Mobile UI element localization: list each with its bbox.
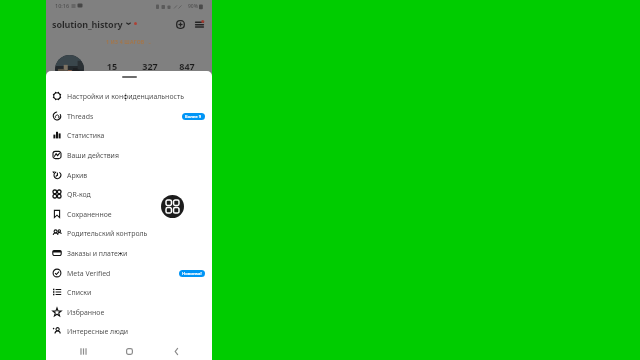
staticText: Заказы и платежи (67, 249, 128, 258)
button[interactable]: Threads (46, 106, 212, 126)
button[interactable]: Родительский контроль (46, 223, 212, 243)
staticText: 90% (188, 3, 198, 10)
button[interactable]: Menu (192, 17, 206, 31)
staticText: Новинка! (182, 271, 202, 277)
staticText: 10:16 (55, 2, 70, 9)
button[interactable]: QR-код (46, 184, 212, 204)
button[interactable]: Избранное (46, 302, 212, 322)
button[interactable]: Настройки и конфиденциальность (46, 86, 212, 106)
staticText: 1 ИЗ 4 ШАГОВ ⌄ (46, 39, 212, 46)
staticText: Ваши действия (67, 151, 119, 160)
staticText: Избранное (67, 308, 105, 317)
button[interactable]: Статистика (46, 125, 212, 145)
staticText: solution_history (52, 18, 123, 30)
button[interactable]: Заказы и платежи (46, 243, 212, 263)
staticText: Настройки и конфиденциальность (67, 92, 184, 101)
staticText: Meta Verified (67, 269, 111, 278)
staticText: 847 (179, 60, 195, 72)
staticText: Более 9 (185, 114, 202, 120)
button[interactable]: Интересные люди (46, 321, 212, 341)
button[interactable]: Home (119, 341, 139, 360)
button[interactable]: Back (166, 341, 186, 360)
staticText: Интересные люди (67, 327, 129, 336)
button[interactable]: QR code (161, 195, 184, 218)
button[interactable]: New post (173, 17, 187, 31)
button[interactable]: Ваши действия (46, 145, 212, 165)
staticText: QR-код (67, 190, 91, 199)
staticText: Статистика (67, 131, 105, 140)
button[interactable]: Списки (46, 282, 212, 302)
staticText: 15 (104, 60, 120, 72)
staticText: Архив (67, 171, 88, 180)
staticText: 327 (142, 60, 158, 72)
staticText: Родительский контроль (67, 229, 148, 238)
button[interactable]: Recents (73, 341, 93, 360)
staticText: Списки (67, 288, 92, 297)
staticText: Сохраненное (67, 210, 112, 219)
staticText: Threads (67, 112, 94, 121)
button[interactable]: Meta Verified (46, 263, 212, 283)
button[interactable]: Сохраненное (46, 204, 212, 224)
button[interactable]: Архив (46, 165, 212, 185)
